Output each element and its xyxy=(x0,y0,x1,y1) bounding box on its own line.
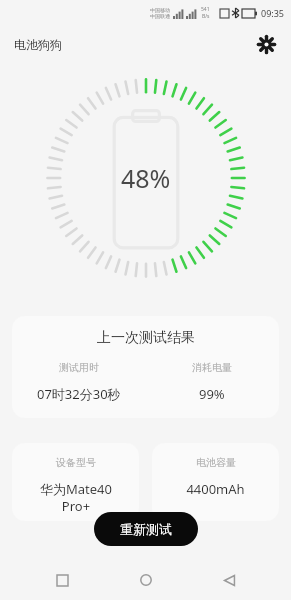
staticText: 48% xyxy=(121,161,171,195)
staticText: 09:35 xyxy=(261,7,285,19)
button[interactable]: 设备型号 xyxy=(12,443,139,521)
button[interactable]: 重新测试 xyxy=(94,512,198,546)
staticText: 541 xyxy=(201,6,210,13)
staticText: 设备型号 xyxy=(56,456,96,469)
staticText: 中国移动 xyxy=(150,7,170,13)
button[interactable]: Back xyxy=(208,560,250,600)
button[interactable]: Recent apps xyxy=(41,560,83,600)
staticText: 华为Mate40 Pro+ xyxy=(40,480,112,514)
staticText: 中国联通 xyxy=(150,13,170,19)
button[interactable]: 上一次测试结果 xyxy=(12,316,279,418)
staticText: 测试用时 xyxy=(59,361,99,374)
button[interactable]: Home xyxy=(125,560,167,600)
staticText: 消耗电量 xyxy=(192,361,232,374)
button[interactable]: Settings xyxy=(251,29,281,59)
staticText: 07时32分30秒 xyxy=(37,385,121,403)
staticText: 重新测试 xyxy=(120,521,172,537)
staticText: B/s xyxy=(202,13,210,20)
staticText: 上一次测试结果 xyxy=(97,329,195,347)
staticText: 99% xyxy=(199,385,225,403)
staticText: 4400mAh xyxy=(186,480,245,498)
button[interactable]: 电池容量 xyxy=(152,443,279,521)
staticText: 电池容量 xyxy=(196,456,236,469)
staticText: 电池狗狗 xyxy=(14,37,62,52)
